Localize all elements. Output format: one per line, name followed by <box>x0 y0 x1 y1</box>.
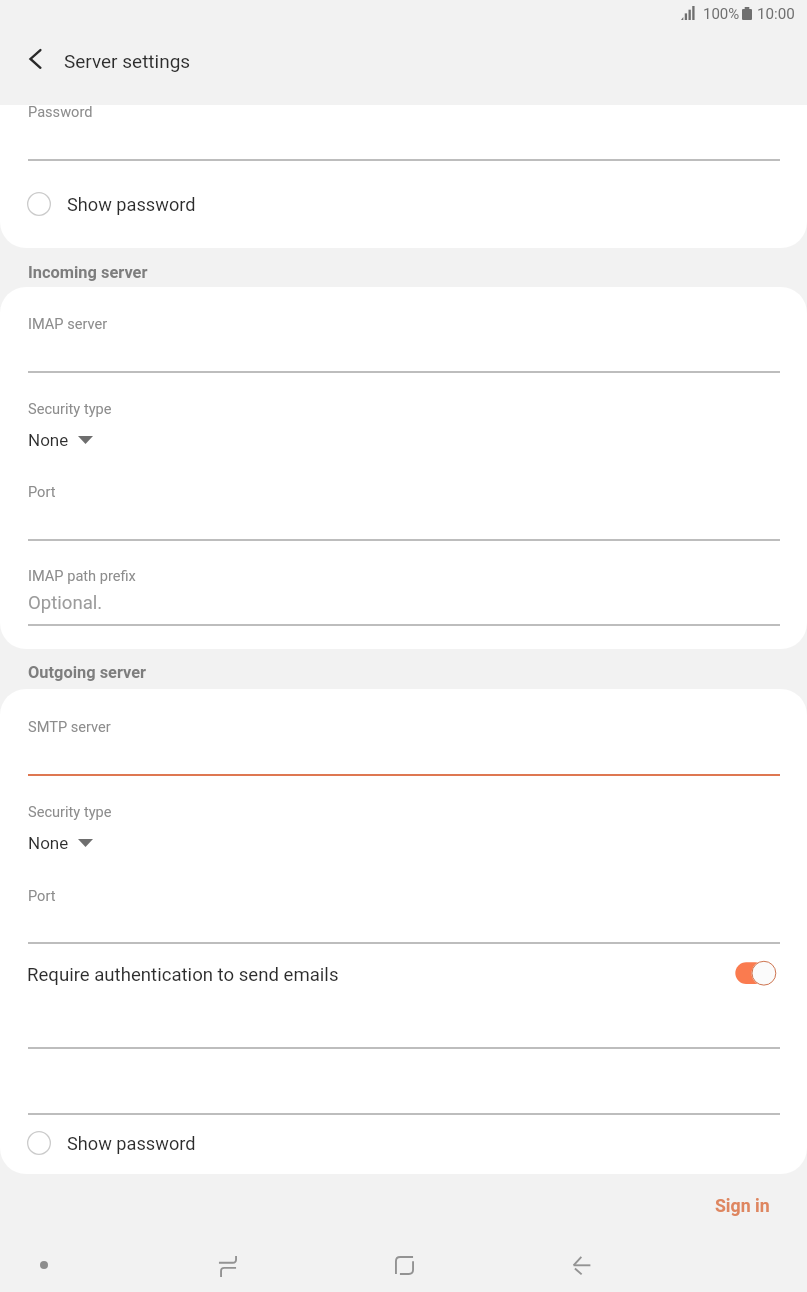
button[interactable]: Port <box>0 876 807 947</box>
staticText: Port <box>28 887 56 904</box>
staticText: Security type <box>28 400 112 417</box>
staticText: Optional. <box>28 592 103 614</box>
staticText: Server settings <box>64 50 191 72</box>
button[interactable]: Sign in <box>700 1187 786 1229</box>
staticText: 10:00 <box>757 5 795 23</box>
button[interactable]: Password <box>0 105 807 164</box>
staticText: Port <box>28 483 56 500</box>
staticText: Require authentication to send emails <box>27 964 339 986</box>
staticText: IMAP path prefix <box>28 567 136 584</box>
button[interactable]: IMAP server <box>0 290 807 375</box>
button[interactable]: Navigate up <box>13 37 58 82</box>
button[interactable]: IMAP path prefix <box>0 556 807 628</box>
staticText: None <box>28 833 69 853</box>
button[interactable]: Port <box>0 472 807 543</box>
button[interactable]: Show password <box>0 1117 807 1169</box>
button[interactable] <box>0 1002 807 1052</box>
staticText: None <box>28 430 69 450</box>
staticText: Show password <box>67 194 196 215</box>
button[interactable]: Require authentication to send emails <box>0 949 807 997</box>
button[interactable]: Recent apps <box>200 1239 254 1292</box>
button[interactable]: Back <box>555 1238 609 1292</box>
staticText: Password <box>28 103 93 120</box>
staticText: Incoming server <box>28 263 148 282</box>
button[interactable] <box>0 1069 807 1118</box>
staticText: Show password <box>67 1133 196 1154</box>
button[interactable]: Security type <box>0 791 807 863</box>
button[interactable]: Home <box>377 1238 431 1292</box>
staticText: SMTP server <box>28 718 111 735</box>
staticText: 100% <box>703 5 740 23</box>
button[interactable]: SMTP server <box>0 692 807 779</box>
button[interactable]: Show password <box>0 178 807 230</box>
staticText: Outgoing server <box>28 663 147 682</box>
button[interactable]: Security type <box>0 388 807 460</box>
staticText: IMAP server <box>28 315 108 332</box>
button[interactable]: Show menu <box>17 1238 71 1292</box>
staticText: Security type <box>28 803 112 820</box>
staticText: Sign in <box>715 1196 770 1217</box>
